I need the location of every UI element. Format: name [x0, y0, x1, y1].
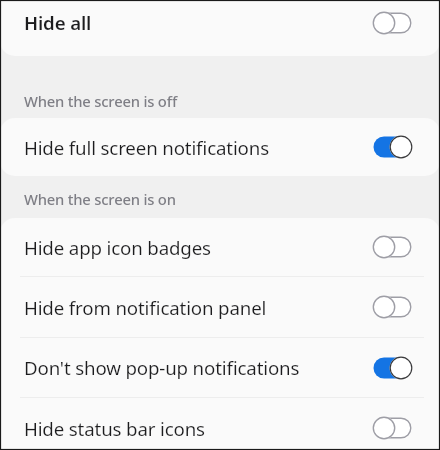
staticText: Hide status bar icons — [24, 416, 205, 441]
staticText: Don't show pop-up notifications — [24, 355, 300, 380]
button[interactable]: Don't show pop-up notifications, on — [373, 356, 412, 380]
staticText: When the screen is off — [24, 91, 178, 111]
button[interactable]: Hide app icon badges, off — [373, 235, 412, 259]
staticText: Hide app icon badges — [24, 235, 211, 260]
staticText: Hide all — [24, 10, 92, 35]
button[interactable]: Hide from notification panel, off — [373, 295, 412, 319]
button[interactable]: Hide from notification panel — [0, 277, 440, 337]
button[interactable]: Hide status bar icons — [0, 398, 440, 450]
button[interactable]: Hide full screen notifications, on — [373, 135, 412, 159]
staticText: Hide from notification panel — [24, 295, 267, 320]
staticText: When the screen is on — [24, 189, 176, 209]
button[interactable]: Hide full screen notifications — [0, 118, 440, 176]
button[interactable]: Don't show pop-up notifications — [0, 338, 440, 397]
button[interactable]: Hide app icon badges — [0, 218, 440, 276]
button[interactable]: Hide all, off — [373, 11, 412, 35]
staticText: Hide full screen notifications — [24, 135, 269, 160]
button[interactable]: Hide all — [0, 0, 440, 45]
button[interactable]: Hide status bar icons, off — [373, 416, 412, 440]
